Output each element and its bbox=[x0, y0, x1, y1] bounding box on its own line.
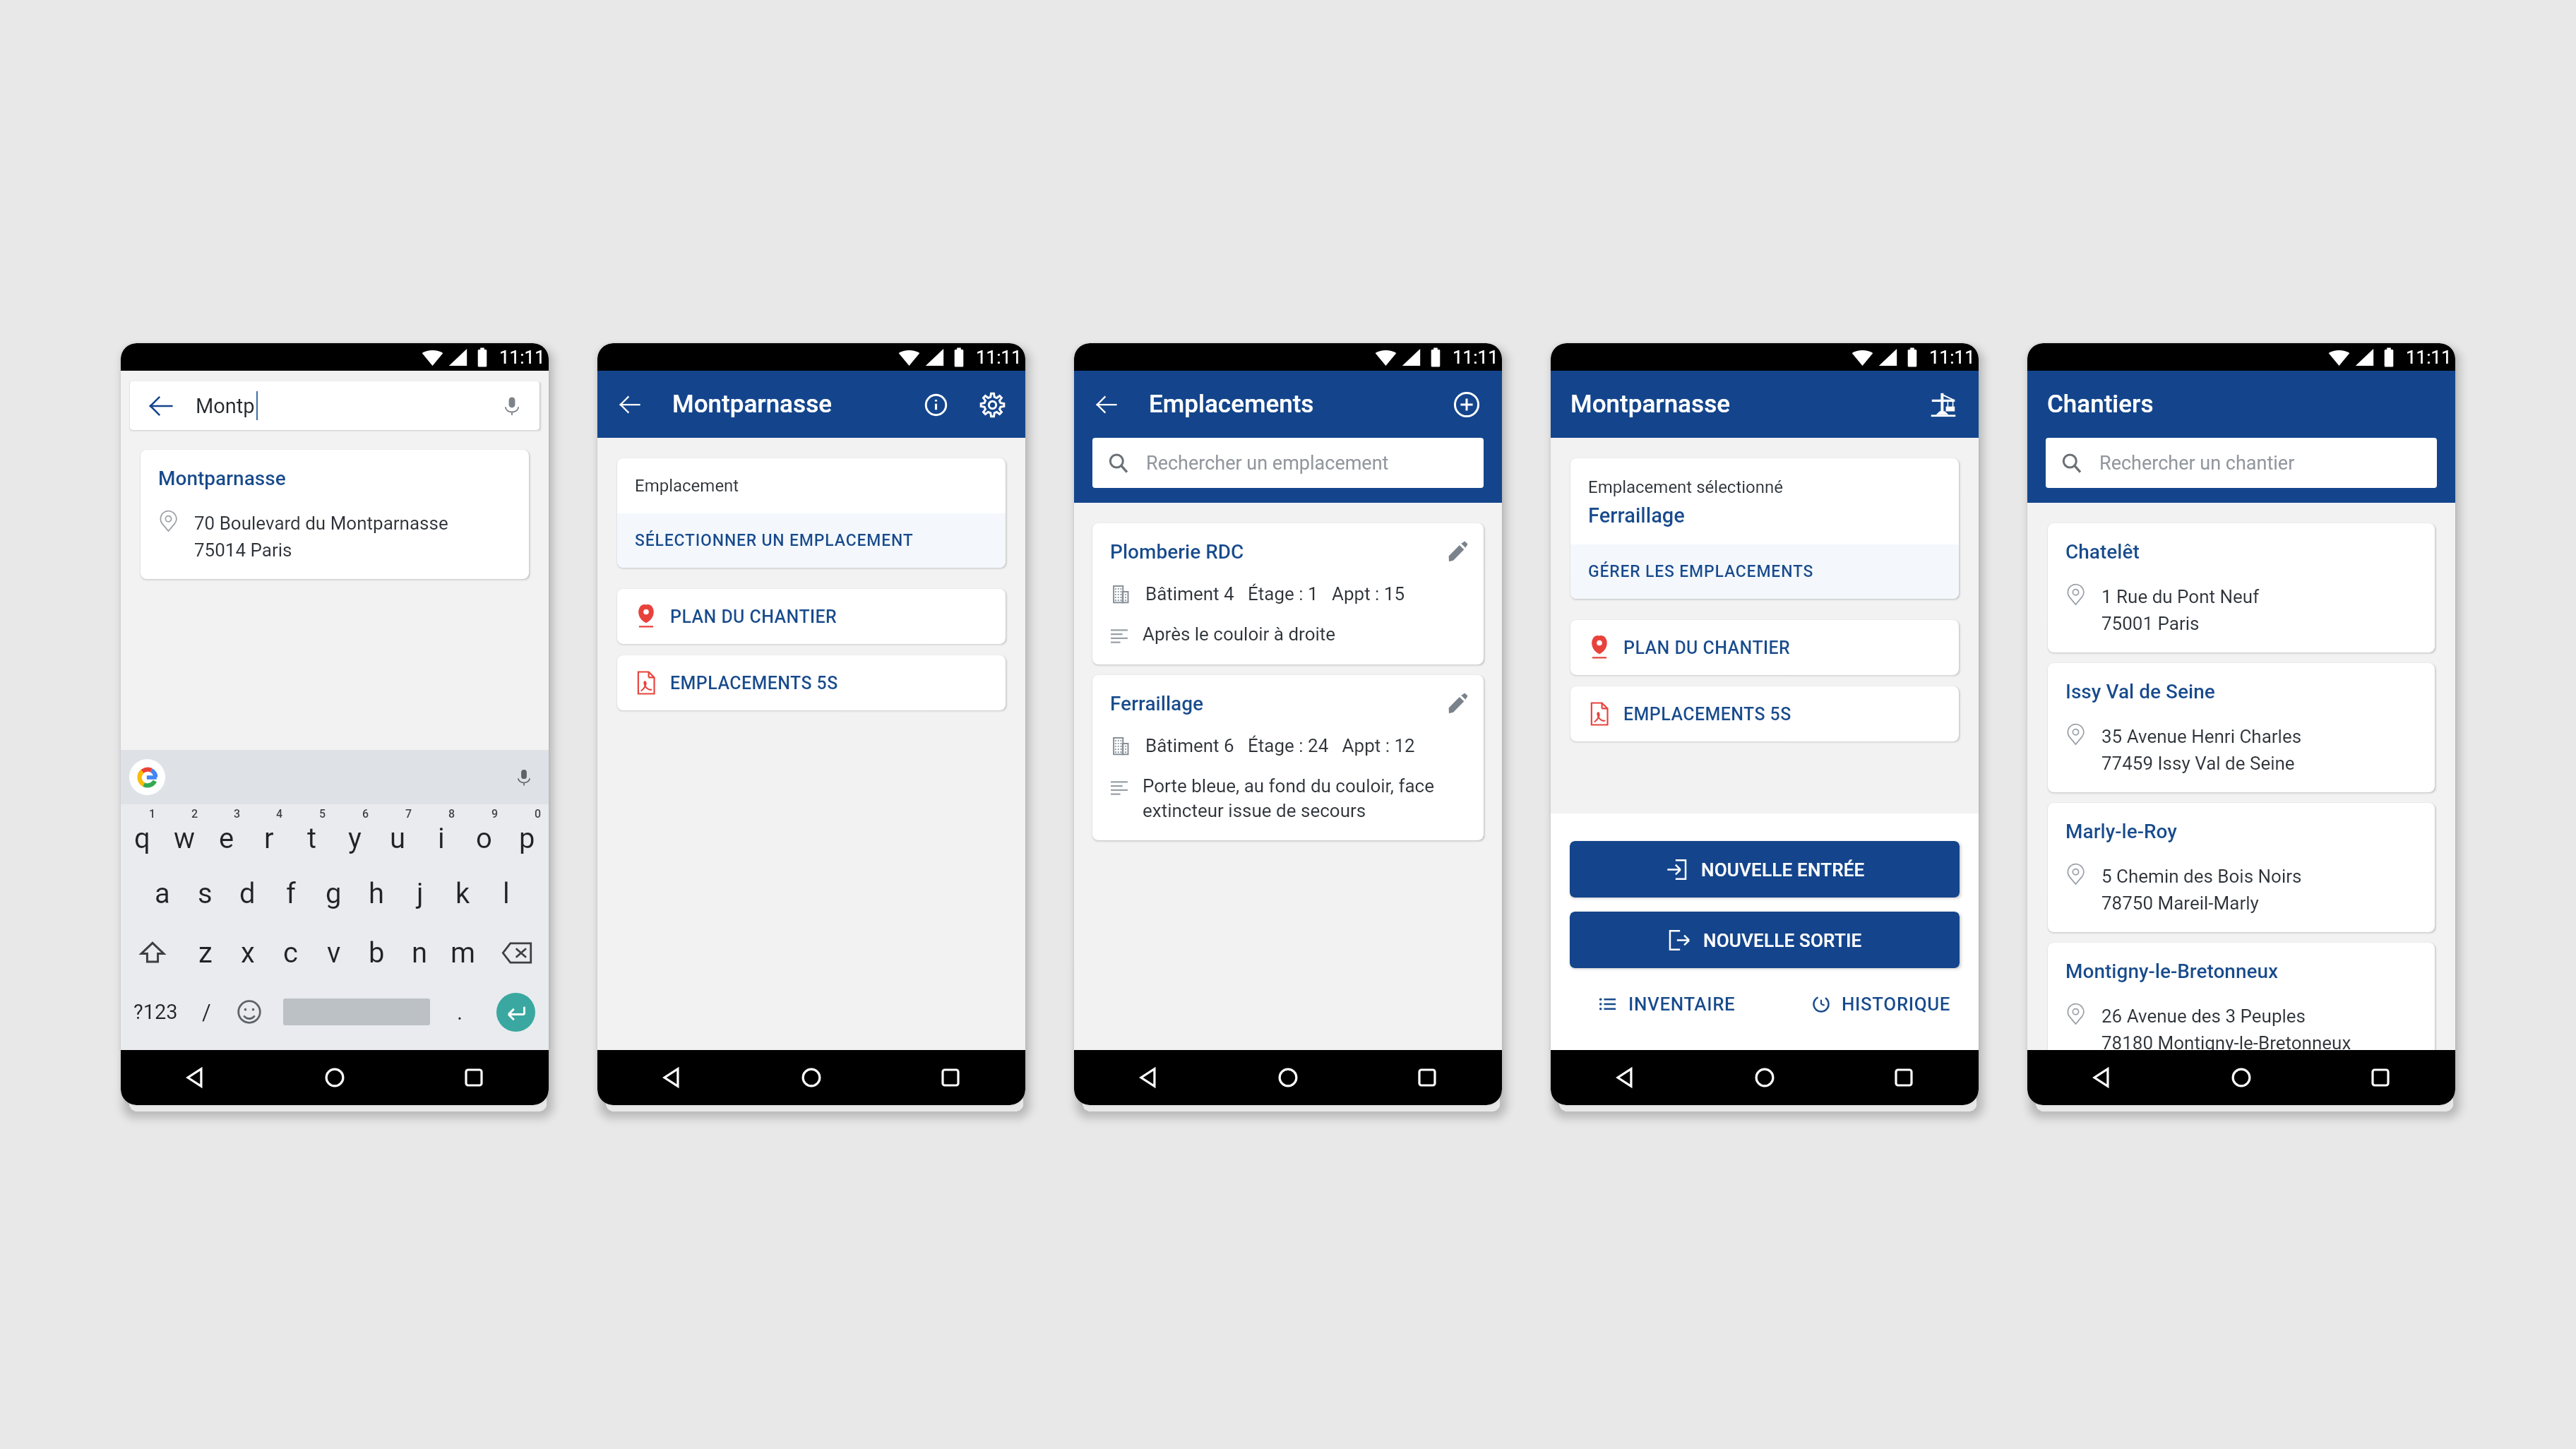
button[interactable]: EMPLACEMENTS 5S bbox=[617, 655, 1006, 710]
staticText: g bbox=[326, 877, 342, 910]
button[interactable]: Settings bbox=[974, 386, 1010, 423]
button[interactable]: b bbox=[355, 923, 398, 982]
staticText: Montparnasse bbox=[1570, 390, 1731, 419]
button[interactable]: Emoji bbox=[222, 982, 276, 1042]
staticText: Rechercher un emplacement bbox=[1146, 452, 1389, 475]
staticText: j bbox=[417, 877, 424, 910]
button[interactable]: Montparnasse bbox=[141, 450, 529, 579]
button[interactable]: GÉRER LES EMPLACEMENTS bbox=[1570, 544, 1959, 599]
button[interactable]: c bbox=[269, 923, 312, 982]
staticText: 3 bbox=[234, 807, 241, 821]
button[interactable]: Back bbox=[1610, 1062, 1641, 1093]
button[interactable]: 0 bbox=[506, 804, 549, 864]
button[interactable]: Plomberie RDC bbox=[1092, 523, 1484, 664]
button[interactable]: Shift bbox=[121, 923, 184, 982]
button[interactable]: Recents bbox=[935, 1062, 966, 1093]
button[interactable]: PLAN DU CHANTIER bbox=[617, 589, 1006, 644]
staticText: NOUVELLE SORTIE bbox=[1703, 930, 1862, 951]
button[interactable]: g bbox=[312, 864, 355, 923]
button[interactable]: HISTORIQUE bbox=[1804, 989, 1960, 1019]
staticText: y bbox=[348, 822, 362, 855]
button[interactable]: Home bbox=[796, 1062, 827, 1093]
button[interactable]: Chatelêt bbox=[2048, 523, 2435, 652]
button[interactable]: . bbox=[437, 982, 482, 1042]
button[interactable]: Home bbox=[2226, 1062, 2257, 1093]
button[interactable]: NOUVELLE SORTIE bbox=[1570, 912, 1960, 968]
button[interactable]: Back bbox=[180, 1062, 211, 1093]
button[interactable]: Montigny-le-Bretonneux bbox=[2048, 943, 2435, 1050]
button[interactable]: Edit bbox=[1443, 537, 1471, 566]
staticText: NOUVELLE ENTRÉE bbox=[1701, 859, 1865, 881]
button[interactable]: j bbox=[398, 864, 441, 923]
button[interactable]: SÉLECTIONNER UN EMPLACEMENT bbox=[617, 513, 1006, 568]
button[interactable]: Back bbox=[2087, 1062, 2118, 1093]
button[interactable]: k bbox=[441, 864, 484, 923]
button[interactable]: a bbox=[141, 864, 184, 923]
staticText: h bbox=[369, 877, 385, 910]
button[interactable]: l bbox=[484, 864, 527, 923]
button[interactable]: Back bbox=[1133, 1062, 1164, 1093]
button[interactable]: 5 bbox=[290, 804, 333, 864]
button[interactable]: Back bbox=[657, 1062, 688, 1093]
button[interactable]: Recents bbox=[458, 1062, 489, 1093]
button[interactable]: d bbox=[226, 864, 269, 923]
button[interactable]: f bbox=[269, 864, 312, 923]
button[interactable]: n bbox=[398, 923, 441, 982]
button[interactable]: Enter bbox=[496, 993, 535, 1032]
button[interactable]: Edit bbox=[1443, 689, 1471, 717]
staticText: INVENTAIRE bbox=[1628, 994, 1736, 1015]
staticText: e bbox=[219, 822, 234, 855]
button[interactable]: Recents bbox=[1888, 1062, 1919, 1093]
button[interactable]: Rechercher un emplacement bbox=[1092, 438, 1484, 488]
button[interactable]: s bbox=[184, 864, 226, 923]
button[interactable]: Home bbox=[1749, 1062, 1780, 1093]
button[interactable]: Voice input bbox=[513, 767, 535, 788]
button[interactable]: Issy Val de Seine bbox=[2048, 663, 2435, 792]
button[interactable]: 6 bbox=[333, 804, 376, 864]
staticText: Ferraillage bbox=[1110, 692, 1204, 715]
staticText: HISTORIQUE bbox=[1842, 994, 1951, 1015]
staticText: w bbox=[174, 822, 196, 855]
button[interactable]: 7 bbox=[376, 804, 419, 864]
staticText: Montigny-le-Bretonneux bbox=[2065, 960, 2279, 983]
button[interactable]: Backspace bbox=[484, 923, 549, 982]
button[interactable]: 4 bbox=[248, 804, 290, 864]
button[interactable]: z bbox=[184, 923, 227, 982]
button[interactable]: Add bbox=[1448, 386, 1485, 423]
button[interactable]: Back bbox=[1088, 386, 1125, 423]
button[interactable]: / bbox=[190, 982, 222, 1042]
button[interactable]: Back bbox=[612, 386, 648, 423]
button[interactable]: Home bbox=[319, 1062, 350, 1093]
button[interactable]: PLAN DU CHANTIER bbox=[1570, 620, 1959, 675]
staticText: Rechercher un chantier bbox=[2099, 452, 2295, 475]
staticText: d bbox=[239, 877, 256, 910]
button[interactable]: Recents bbox=[1412, 1062, 1443, 1093]
button[interactable]: Info bbox=[917, 386, 954, 423]
staticText: 9 bbox=[491, 807, 499, 821]
button[interactable]: Montp bbox=[130, 381, 539, 430]
button[interactable]: NOUVELLE ENTRÉE bbox=[1570, 841, 1960, 898]
button[interactable]: 2 bbox=[163, 804, 205, 864]
button[interactable]: 9 bbox=[463, 804, 506, 864]
button[interactable]: 8 bbox=[419, 804, 463, 864]
button[interactable]: Marly-le-Roy bbox=[2048, 803, 2435, 932]
button[interactable]: m bbox=[441, 923, 484, 982]
button[interactable]: Chantiers bbox=[1925, 386, 1962, 423]
button[interactable]: Google bbox=[129, 759, 165, 795]
button[interactable]: 3 bbox=[205, 804, 248, 864]
button[interactable]: Rechercher un chantier bbox=[2046, 438, 2437, 488]
button[interactable]: Home bbox=[1272, 1062, 1304, 1093]
button[interactable]: h bbox=[355, 864, 398, 923]
button[interactable]: INVENTAIRE bbox=[1591, 989, 1744, 1019]
button[interactable]: v bbox=[312, 923, 355, 982]
staticText: f bbox=[286, 877, 296, 910]
button[interactable]: Ferraillage bbox=[1092, 675, 1484, 840]
button[interactable]: x bbox=[227, 923, 269, 982]
button[interactable]: ?123 bbox=[121, 982, 190, 1042]
staticText: Porte bleue, au fond du couloir, face bbox=[1143, 775, 1434, 797]
button[interactable]: 1 bbox=[121, 804, 163, 864]
button[interactable]: Space bbox=[283, 998, 430, 1025]
button[interactable]: Recents bbox=[2365, 1062, 2396, 1093]
button[interactable]: EMPLACEMENTS 5S bbox=[1570, 686, 1959, 741]
staticText: PLAN DU CHANTIER bbox=[1623, 638, 1791, 658]
